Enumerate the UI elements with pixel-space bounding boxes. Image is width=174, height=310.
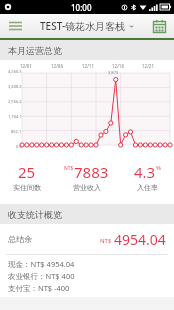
staticText: 实住间数 (13, 183, 41, 192)
staticText: 支付宝：NT$ -400 (8, 283, 70, 293)
staticText: 农业银行：NT$ 400 (8, 271, 75, 281)
button[interactable]: 4.3 (120, 160, 174, 194)
staticText: 4.3 (134, 162, 156, 182)
staticText: 0.0 (16, 144, 22, 149)
staticText: 3,873 (108, 70, 119, 75)
button[interactable]: 25 (0, 160, 53, 194)
staticText: 1,704.1 (8, 114, 22, 119)
staticText: TEST-镜花水月客栈 (40, 19, 126, 33)
staticText: 12/21 (142, 63, 154, 69)
staticText: 4,260.3 (8, 69, 22, 74)
staticText: 12/06 (51, 63, 63, 69)
staticText: 收支统计概览 (8, 209, 62, 220)
staticText: 本月运营总览 (8, 45, 62, 56)
staticText: 2,556.2 (8, 99, 22, 104)
button[interactable]: NT$ (53, 160, 120, 194)
button[interactable]: 总结余 (0, 224, 174, 254)
staticText: 3,408.2 (8, 84, 22, 89)
staticText: 12/01 (20, 63, 32, 69)
staticText: 4954.04 (114, 230, 166, 249)
button[interactable]: Menu (0, 14, 30, 38)
staticText: NT$ (100, 237, 112, 245)
staticText: 总结余 (8, 234, 32, 244)
staticText: 852.1 (11, 129, 22, 134)
button[interactable]: Calendar (145, 14, 174, 38)
staticText: 10:00 (71, 2, 92, 13)
staticText: % (156, 164, 161, 172)
staticText: 7883 (74, 162, 109, 182)
staticText: 12/16 (112, 63, 124, 69)
staticText: 入住率 (137, 183, 158, 192)
staticText: 营业收入 (73, 183, 101, 192)
staticText: 25 (18, 162, 36, 182)
staticText: 12/11 (82, 63, 94, 69)
staticText: NT$ (64, 165, 74, 172)
staticText: 现金：NT$ 4954.04 (8, 259, 75, 269)
